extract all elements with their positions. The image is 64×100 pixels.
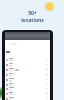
button[interactable] bbox=[5, 57, 50, 62]
button[interactable] bbox=[5, 82, 50, 87]
button[interactable] bbox=[5, 62, 50, 67]
button[interactable] bbox=[5, 91, 50, 96]
button[interactable] bbox=[5, 86, 50, 91]
button[interactable] bbox=[5, 77, 50, 82]
staticText: 50+ bbox=[28, 10, 37, 17]
button[interactable] bbox=[5, 67, 50, 72]
button[interactable] bbox=[5, 96, 50, 100]
staticText: locations bbox=[21, 17, 44, 24]
button[interactable] bbox=[5, 72, 50, 77]
